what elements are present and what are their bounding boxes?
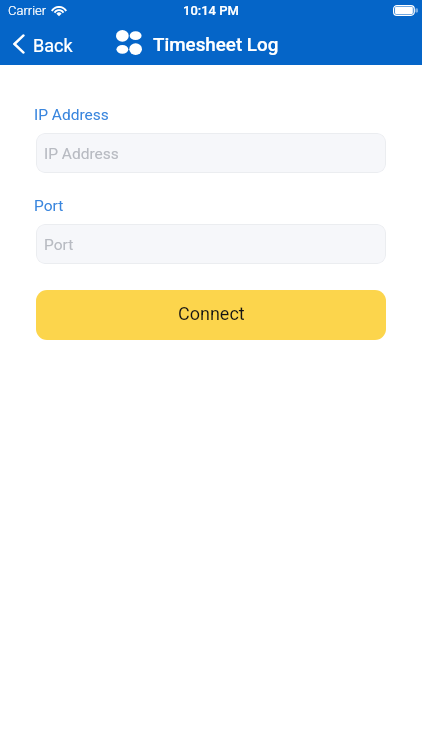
other: Battery full xyxy=(393,5,418,16)
button[interactable]: Port xyxy=(36,224,386,264)
button[interactable]: Back xyxy=(0,28,85,59)
other: Wi-Fi signal xyxy=(51,3,67,15)
button[interactable]: IP Address xyxy=(36,133,386,173)
button[interactable]: Connect xyxy=(36,290,386,340)
staticText: Timesheet Log xyxy=(153,34,279,56)
staticText: Back xyxy=(33,35,73,56)
staticText: 10:14 PM xyxy=(183,3,239,18)
staticText: Connect xyxy=(178,303,245,324)
staticText: IP Address xyxy=(34,106,109,124)
staticText: IP Address xyxy=(44,145,119,163)
staticText: Carrier xyxy=(8,3,47,18)
staticText: Port xyxy=(44,236,74,254)
staticText: Port xyxy=(34,197,64,215)
